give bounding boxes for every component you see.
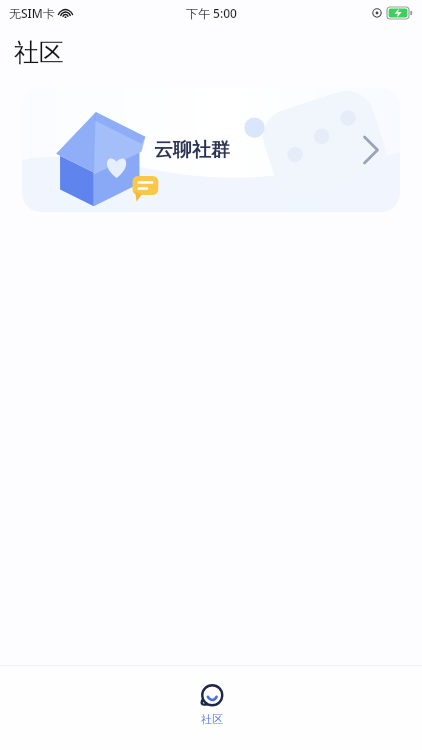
staticText: 下午 5:00 — [186, 5, 237, 21]
staticText: 社区 — [14, 37, 64, 68]
button[interactable]: 社区 — [181, 682, 242, 728]
staticText: 社区 — [201, 712, 223, 726]
button[interactable]: 云聊社群 — [22, 88, 400, 212]
staticText: 云聊社群 — [154, 138, 230, 162]
staticText: 无SIM卡 — [9, 5, 55, 21]
